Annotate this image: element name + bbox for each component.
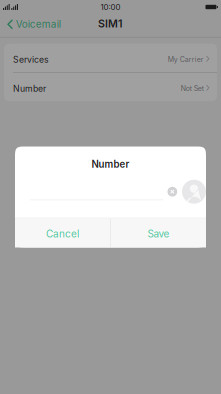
staticText: 10:00 bbox=[100, 2, 120, 12]
button[interactable]: Number bbox=[4, 73, 217, 101]
staticText: My Carrier bbox=[168, 55, 204, 64]
staticText: Cancel bbox=[46, 228, 79, 240]
staticText: SIM1 bbox=[98, 17, 123, 30]
button[interactable]: Cancel bbox=[15, 218, 110, 247]
button[interactable]: Save bbox=[111, 218, 206, 247]
button[interactable]: Choose contact bbox=[177, 180, 206, 204]
staticText: Number bbox=[91, 158, 129, 170]
staticText: Voicemail bbox=[16, 18, 61, 30]
staticText: Save bbox=[147, 228, 169, 240]
staticText: Not Set bbox=[181, 84, 204, 93]
button[interactable]: Clear text bbox=[167, 187, 177, 196]
button[interactable]: Services bbox=[4, 44, 217, 72]
button[interactable]: Voicemail bbox=[0, 15, 67, 37]
staticText: Services bbox=[13, 54, 49, 65]
staticText: Number bbox=[13, 83, 46, 94]
